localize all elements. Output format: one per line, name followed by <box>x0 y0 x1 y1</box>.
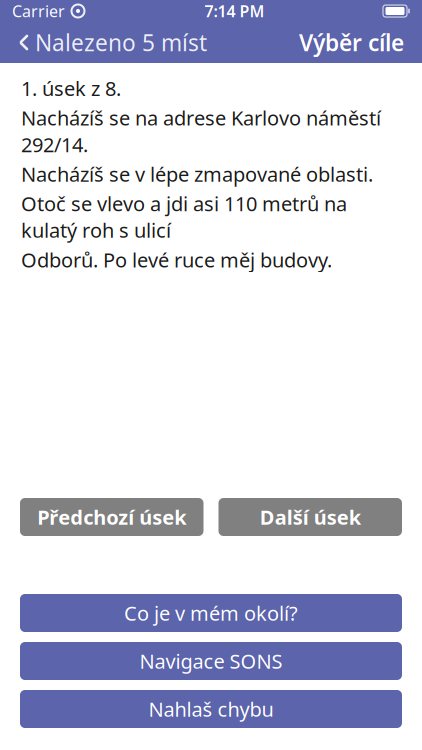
staticText: Nahlaš chybu <box>148 696 273 722</box>
button[interactable]: Co je v mém okolí? <box>20 594 402 632</box>
staticText: Další úsek <box>260 504 361 530</box>
staticText: Předchozí úsek <box>37 504 186 530</box>
staticText: Carrier <box>12 0 65 22</box>
staticText: 1. úsek z 8. <box>21 75 121 102</box>
staticText: Co je v mém okolí? <box>124 600 298 626</box>
staticText: Nalezeno 5 míst <box>35 27 207 57</box>
button[interactable]: Výběr cíle <box>295 19 408 65</box>
button[interactable]: Předchozí úsek <box>20 498 203 536</box>
staticText: Otoč se vlevo a jdi asi 110 metrů na kul… <box>21 190 347 243</box>
staticText: Odborů. Po levé ruce měj budovy. <box>21 246 332 273</box>
button[interactable]: Nahlaš chybu <box>20 690 402 728</box>
staticText: 7:14 PM <box>204 0 264 22</box>
button[interactable]: Nalezeno 5 míst <box>14 19 211 65</box>
button[interactable]: Další úsek <box>218 498 402 536</box>
button[interactable]: Navigace SONS <box>20 642 402 680</box>
staticText: Navigace SONS <box>139 648 282 674</box>
staticText: Nacházíš se v lépe zmapované oblasti. <box>21 161 373 187</box>
staticText: Výběr cíle <box>299 27 404 57</box>
staticText: Nacházíš se na adrese Karlovo náměstí 29… <box>21 105 381 158</box>
